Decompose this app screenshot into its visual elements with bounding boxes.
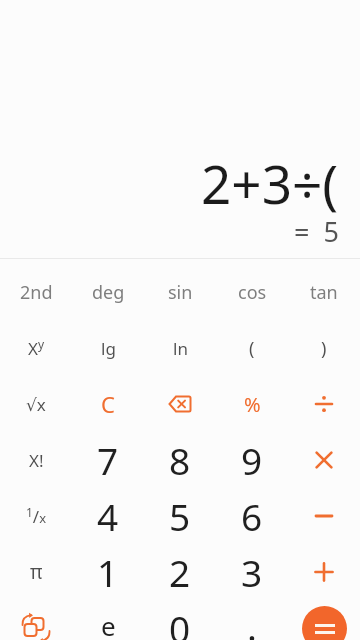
button[interactable]: lg [72,320,144,376]
button[interactable] [288,432,360,488]
button[interactable]: . [216,600,288,640]
button[interactable] [288,376,360,432]
button[interactable]: √x [0,376,72,432]
staticText: 7 [97,435,119,485]
button[interactable] [0,600,72,640]
staticText: X! [29,449,44,472]
staticText: C [101,389,115,419]
staticText: lg [101,337,116,360]
button[interactable] [302,606,347,640]
button[interactable]: e [72,600,144,640]
staticText: ) [321,336,327,361]
staticText: √x [26,393,46,416]
button[interactable]: deg [72,264,144,320]
staticText: 2nd [20,280,53,305]
staticText: . [247,601,257,640]
staticText: cos [238,280,267,305]
button[interactable]: π [0,544,72,600]
staticText: 2+3÷( [201,147,339,219]
button[interactable]: 3 [216,544,288,600]
staticText: π [30,559,43,585]
staticText: ( [249,336,255,361]
button[interactable]: 4 [72,488,144,544]
button[interactable] [288,600,360,640]
staticText: tan [310,280,338,305]
staticText: 5 [169,491,191,541]
staticText: 1/x [26,504,47,528]
staticText: 1 [97,547,119,597]
staticText: 2 [169,547,191,597]
staticText: = 5 [294,213,339,250]
staticText: 3 [241,547,263,597]
staticText: sin [168,280,193,305]
button[interactable] [288,488,360,544]
button[interactable]: C [72,376,144,432]
button[interactable]: 1/x [0,488,72,544]
button[interactable]: 6 [216,488,288,544]
staticText: 9 [241,435,263,485]
button[interactable]: 2nd [0,264,72,320]
staticText: e [101,608,116,640]
staticText: 6 [241,491,263,541]
button[interactable]: ) [288,320,360,376]
button[interactable]: 8 [144,432,216,488]
button[interactable]: 0 [144,600,216,640]
button[interactable]: tan [288,264,360,320]
staticText: 8 [169,435,191,485]
button[interactable] [288,544,360,600]
staticText: % [244,391,261,418]
button[interactable]: 9 [216,432,288,488]
button[interactable]: % [216,376,288,432]
button[interactable]: X! [0,432,72,488]
button[interactable] [144,376,216,432]
button[interactable]: sin [144,264,216,320]
staticText: 0 [169,603,191,640]
staticText: 4 [97,491,119,541]
staticText: ln [173,337,188,360]
button[interactable]: 2 [144,544,216,600]
button[interactable]: 5 [144,488,216,544]
button[interactable]: 1 [72,544,144,600]
button[interactable]: 7 [72,432,144,488]
button[interactable]: ( [216,320,288,376]
button[interactable]: Xy [0,320,72,376]
staticText: deg [92,280,125,305]
button[interactable]: ln [144,320,216,376]
staticText: Xy [28,336,45,360]
button[interactable]: cos [216,264,288,320]
